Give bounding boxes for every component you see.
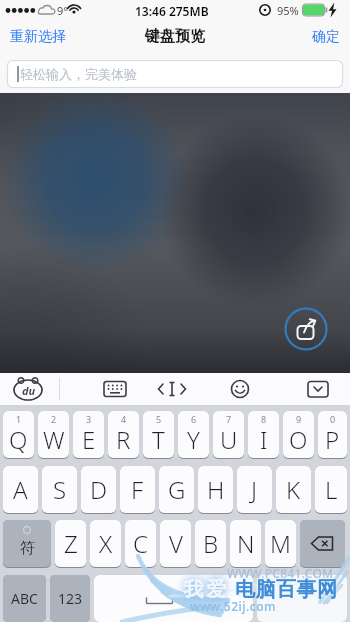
staticText: 95% <box>277 3 299 18</box>
staticText: N <box>237 527 255 560</box>
staticText: 123 <box>58 589 83 608</box>
button[interactable]: 0 <box>318 411 347 459</box>
staticText: T <box>152 423 165 456</box>
button[interactable]: C <box>125 520 156 568</box>
staticText: 5 <box>156 413 162 425</box>
button[interactable] <box>204 373 277 405</box>
button[interactable]: Z <box>55 520 86 568</box>
staticText: 6 <box>191 413 197 425</box>
button[interactable]: 轻松输入，完美体验 <box>7 60 343 88</box>
staticText: O <box>289 423 308 456</box>
button[interactable] <box>257 575 347 622</box>
staticText: V <box>169 527 183 560</box>
button[interactable]: 123 <box>50 575 90 622</box>
button[interactable]: 3 <box>73 411 104 459</box>
staticText: 1 <box>16 413 22 425</box>
button[interactable]: X <box>90 520 121 568</box>
button[interactable]: F <box>120 466 155 514</box>
staticText: R <box>116 423 131 456</box>
button[interactable]: L <box>315 466 347 514</box>
button[interactable]: 1 <box>3 411 34 459</box>
staticText: K <box>286 473 301 506</box>
button[interactable]: 符 <box>3 520 51 568</box>
button[interactable]: H <box>198 466 233 514</box>
staticText: 4 <box>121 413 127 425</box>
staticText: 确定 <box>312 28 340 46</box>
staticText: X <box>99 527 113 560</box>
staticText: F <box>131 473 144 506</box>
staticText: Y <box>187 423 200 456</box>
staticText: A <box>13 473 28 506</box>
staticText: 9 <box>296 413 302 425</box>
button[interactable]: 确定 <box>304 24 350 50</box>
staticText: B <box>203 527 219 560</box>
staticText: du <box>22 383 36 398</box>
staticText: S <box>53 473 67 506</box>
button[interactable]: A <box>3 466 38 514</box>
button[interactable]: 重新选择 <box>0 24 74 50</box>
staticText: E <box>82 423 96 456</box>
staticText: 电脑百事网 <box>235 577 338 602</box>
button[interactable]: 9 <box>283 411 314 459</box>
staticText: L <box>325 473 338 506</box>
staticText: D <box>90 473 108 506</box>
staticText: W <box>43 423 65 456</box>
button[interactable]: M <box>265 520 296 568</box>
button[interactable] <box>94 575 253 622</box>
staticText: I <box>260 423 268 456</box>
staticText: 重新选择 <box>10 28 66 46</box>
staticText: P <box>325 423 340 456</box>
staticText: 13:46 275MB <box>135 3 209 19</box>
button[interactable]: J <box>237 466 272 514</box>
staticText: ABC <box>11 589 38 608</box>
staticText: U <box>220 423 238 456</box>
staticText: G <box>168 473 186 506</box>
staticText: 8 <box>261 413 267 425</box>
button[interactable]: K <box>276 466 311 514</box>
button[interactable]: S <box>42 466 77 514</box>
button[interactable]: B <box>195 520 226 568</box>
button[interactable]: N <box>230 520 261 568</box>
button[interactable]: 7 <box>213 411 244 459</box>
staticText: Z <box>64 527 78 560</box>
staticText: Q <box>9 423 28 456</box>
staticText: C <box>133 527 148 560</box>
button[interactable] <box>300 520 345 568</box>
button[interactable]: D <box>81 466 116 514</box>
staticText: 9° <box>57 3 68 18</box>
staticText: 轻松输入，完美体验 <box>20 66 137 82</box>
staticText: 符 <box>20 539 35 558</box>
staticText: J <box>251 473 258 506</box>
button[interactable]: G <box>159 466 194 514</box>
button[interactable] <box>60 373 132 405</box>
button[interactable] <box>132 373 204 405</box>
button[interactable]: 4 <box>108 411 139 459</box>
staticText: 3 <box>86 413 92 425</box>
button[interactable]: ABC <box>3 575 46 622</box>
staticText: 键盘预览 <box>145 27 205 46</box>
staticText: WWW.PC841.COM <box>227 565 334 581</box>
staticText: 0 <box>330 413 336 425</box>
button[interactable] <box>277 373 350 405</box>
staticText: H <box>207 473 225 506</box>
button[interactable]: 6 <box>178 411 209 459</box>
button[interactable]: 8 <box>248 411 279 459</box>
staticText: www.52ij.com <box>190 598 276 614</box>
button[interactable]: V <box>160 520 191 568</box>
button[interactable]: 5 <box>143 411 174 459</box>
staticText: 7 <box>226 413 232 425</box>
button[interactable] <box>284 307 328 351</box>
staticText: M <box>270 527 291 560</box>
staticText: 2 <box>51 413 57 425</box>
staticText: 我爱 <box>182 577 228 602</box>
button[interactable]: 2 <box>38 411 69 459</box>
button[interactable]: du <box>0 373 59 405</box>
